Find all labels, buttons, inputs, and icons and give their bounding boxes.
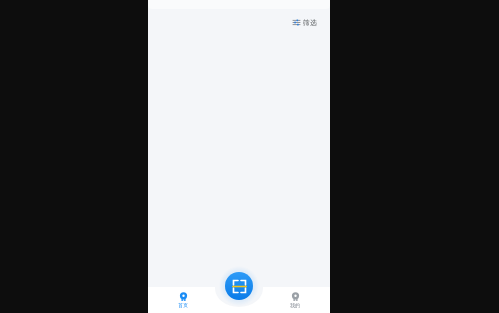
staticText: 首页: [178, 302, 188, 308]
staticText: 我的: [290, 302, 300, 308]
button[interactable]: 筛选: [290, 16, 320, 29]
button[interactable]: 首页: [162, 287, 204, 313]
button[interactable]: 我的: [274, 287, 316, 313]
staticText: 筛选: [303, 18, 317, 27]
button[interactable]: 扫一扫: [219, 266, 259, 306]
